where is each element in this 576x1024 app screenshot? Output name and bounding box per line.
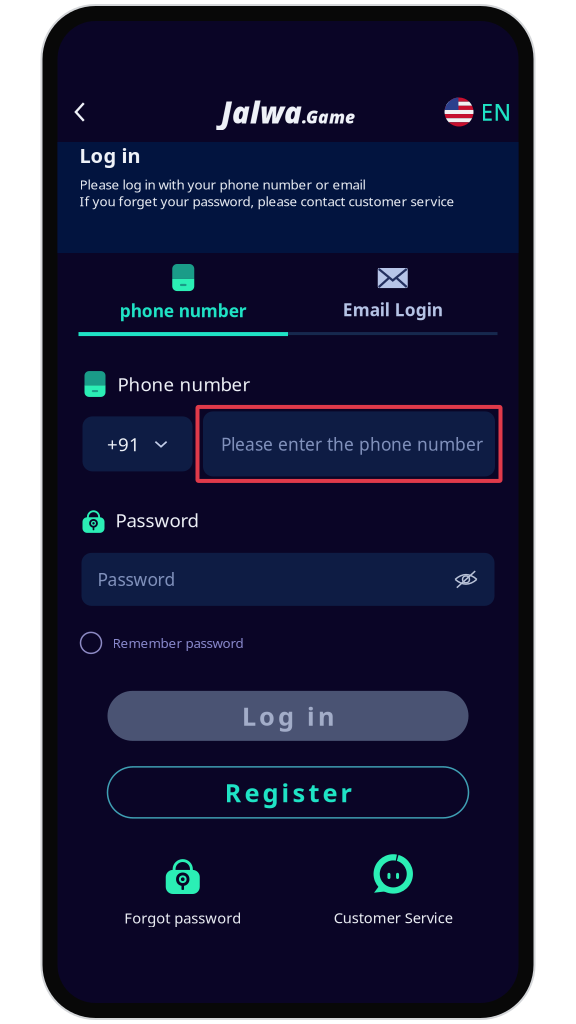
staticText: Please log in with your phone number or … — [79, 176, 365, 193]
staticText: Phone number — [117, 372, 250, 396]
button[interactable]: Email Login — [288, 254, 497, 335]
button[interactable]: +91 — [82, 416, 192, 471]
staticText: +91 — [107, 431, 140, 456]
staticText: Forgot password — [124, 908, 241, 927]
staticText: phone number — [120, 299, 247, 322]
staticText: Log in — [79, 142, 140, 169]
staticText: Please enter the phone number — [221, 432, 483, 455]
staticText: Register — [224, 775, 351, 809]
button[interactable]: Please enter the phone number — [195, 405, 502, 483]
staticText: Remember password — [112, 634, 243, 652]
button[interactable]: Remember password — [80, 630, 518, 656]
staticText: Password — [115, 507, 198, 532]
button[interactable]: Log in — [107, 691, 468, 741]
staticText: If you forget your password, please cont… — [79, 192, 454, 210]
button[interactable]: Password — [81, 553, 494, 606]
button[interactable]: Register — [107, 767, 468, 818]
staticText: Customer Service — [334, 908, 453, 927]
button[interactable]: Customer Service — [288, 854, 498, 927]
staticText: Log in — [242, 699, 334, 733]
staticText: .Game — [302, 105, 355, 128]
button[interactable]: Forgot password — [77, 854, 288, 927]
staticText: EN — [480, 97, 511, 127]
staticText: Jalwa — [221, 92, 302, 131]
staticText: Password — [97, 568, 175, 591]
button[interactable]: Language: English — [444, 90, 511, 134]
staticText: Email Login — [343, 298, 443, 321]
button[interactable]: phone number — [78, 253, 288, 336]
button[interactable]: Back — [69, 90, 113, 134]
